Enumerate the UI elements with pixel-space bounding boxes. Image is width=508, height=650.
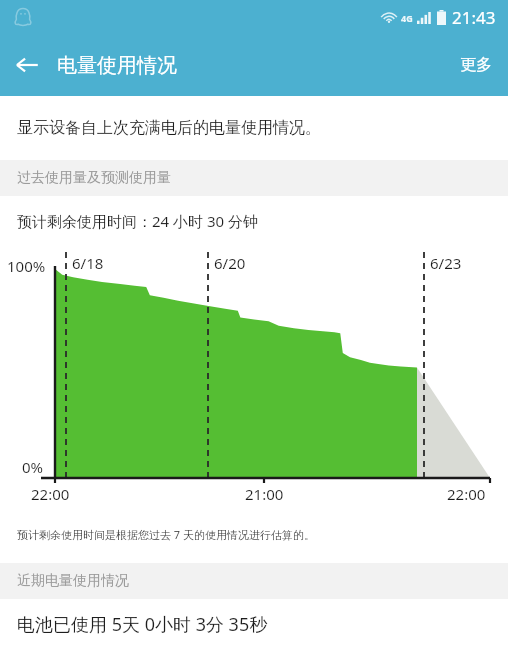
button[interactable]: 返回 bbox=[4, 42, 50, 88]
staticText: 21:43 bbox=[452, 6, 496, 29]
staticText: 6/20 bbox=[214, 253, 246, 273]
staticText: 过去使用量及预测使用量 bbox=[17, 169, 171, 187]
staticText: 100% bbox=[7, 256, 46, 276]
staticText: 6/18 bbox=[72, 253, 104, 273]
staticText: 电池已使用 5天 0小时 3分 35秒 bbox=[17, 612, 268, 637]
staticText: 更多 bbox=[460, 55, 492, 75]
staticText: 6/23 bbox=[430, 253, 462, 273]
staticText: 近期电量使用情况 bbox=[17, 572, 129, 590]
staticText: 22:00 bbox=[31, 484, 70, 504]
staticText: 预计剩余使用时间：24 小时 30 分钟 bbox=[17, 211, 259, 231]
staticText: 电量使用情况 bbox=[57, 53, 177, 78]
staticText: 4G bbox=[401, 12, 413, 24]
staticText: 21:00 bbox=[245, 484, 284, 504]
staticText: 22:00 bbox=[447, 484, 486, 504]
staticText: 预计剩余使用时间是根据您过去 7 天的使用情况进行估算的。 bbox=[17, 527, 316, 542]
button[interactable]: 更多 bbox=[444, 43, 508, 87]
staticText: 0% bbox=[22, 457, 44, 477]
staticText: 显示设备自上次充满电后的电量使用情况。 bbox=[17, 118, 321, 138]
button[interactable]: 电池已使用 5天 0小时 3分 35秒 bbox=[0, 599, 508, 650]
